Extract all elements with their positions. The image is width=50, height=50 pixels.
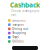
- staticText: Groceries: [12, 19, 25, 22]
- staticText: Shopping: [12, 31, 26, 35]
- button[interactable]: [12, 46, 38, 50]
- button[interactable]: Groceries: [8, 18, 42, 23]
- button[interactable]: Dining out: [8, 27, 42, 31]
- button[interactable]: Transport: [8, 23, 42, 27]
- staticText: Transport: [12, 23, 24, 26]
- button[interactable]: Utilities: [8, 39, 42, 44]
- staticText: Cashback: [10, 0, 40, 9]
- button[interactable]: Shopping: [8, 31, 42, 35]
- staticText: Utilities: [12, 40, 23, 43]
- staticText: Travel: [12, 35, 19, 39]
- staticText: Choose a category to earn: [10, 9, 39, 16]
- button[interactable]: Travel: [8, 35, 42, 39]
- staticText: Dining out: [12, 27, 28, 31]
